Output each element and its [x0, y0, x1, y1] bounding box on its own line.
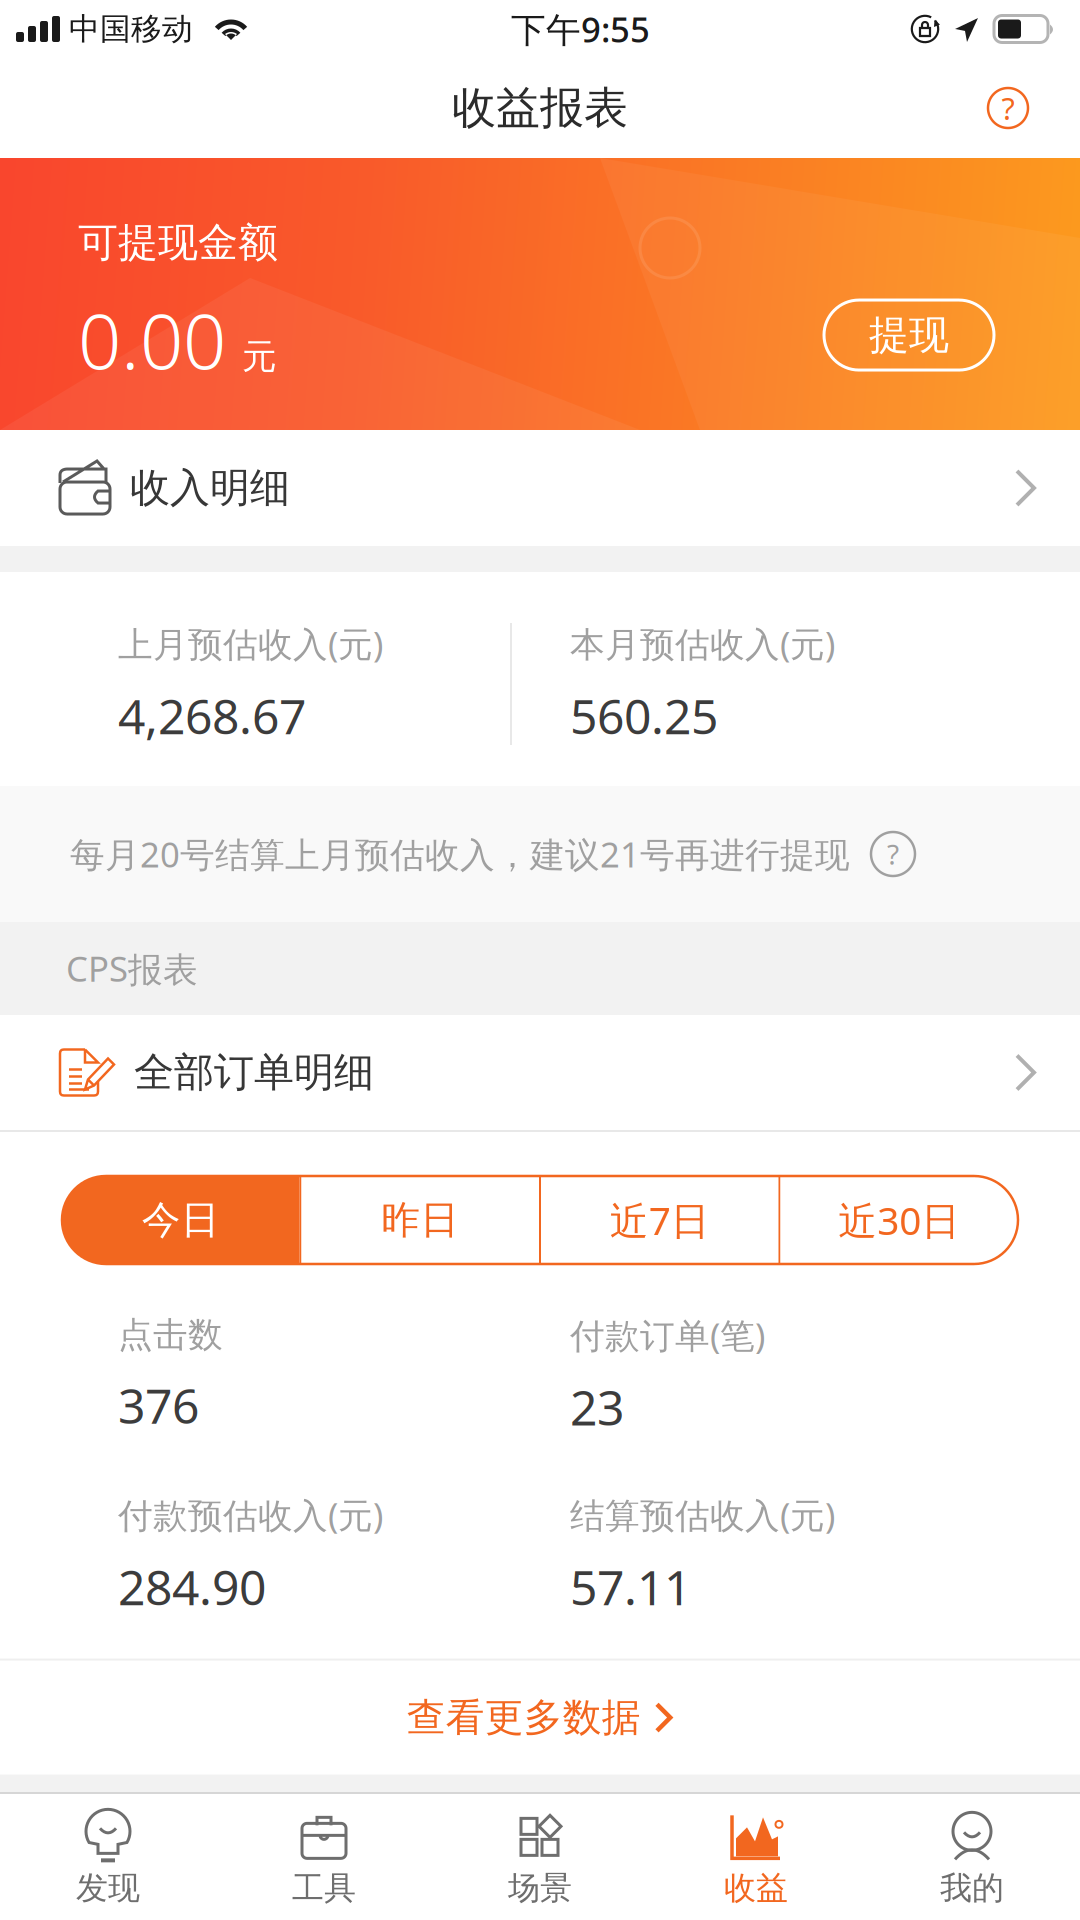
- staticText: 查看更多数据: [407, 1694, 641, 1741]
- staticText: 23: [570, 1375, 624, 1439]
- staticText: CPS报表: [66, 945, 198, 992]
- staticText: 中国移动: [69, 10, 193, 48]
- staticText: 收入明细: [130, 463, 290, 512]
- staticText: 每月20号结算上月预估收入，建议21号再进行提现: [70, 831, 850, 877]
- staticText: 收益报表: [452, 81, 628, 135]
- staticText: ?: [887, 835, 899, 873]
- staticText: 提现: [869, 310, 949, 360]
- staticText: 上月预估收入(元): [118, 621, 383, 667]
- staticText: 我的: [940, 1868, 1004, 1908]
- button[interactable]: 我的: [864, 1794, 1080, 1920]
- staticText: 57.11: [570, 1555, 691, 1618]
- staticText: 近30日: [838, 1194, 960, 1246]
- staticText: 4,268.67: [118, 684, 306, 747]
- button[interactable]: 昨日: [301, 1176, 539, 1264]
- button[interactable]: 发现: [0, 1794, 216, 1920]
- staticText: 点击数: [118, 1314, 223, 1356]
- button[interactable]: 全部订单明细: [0, 1015, 1080, 1130]
- staticText: ?: [1001, 88, 1014, 128]
- staticText: 下午9:55: [511, 6, 650, 52]
- staticText: 场景: [508, 1868, 572, 1908]
- button[interactable]: 查看更多数据: [0, 1661, 1080, 1775]
- staticText: 376: [118, 1373, 199, 1437]
- staticText: 0.00: [78, 289, 226, 390]
- button[interactable]: 场景: [432, 1794, 648, 1920]
- staticText: 结算预估收入(元): [570, 1492, 835, 1538]
- staticText: 发现: [76, 1868, 140, 1908]
- button[interactable]: 工具: [216, 1794, 432, 1920]
- staticText: 本月预估收入(元): [570, 621, 835, 667]
- button[interactable]: 收入明细: [0, 430, 1080, 546]
- staticText: 近7日: [610, 1194, 710, 1246]
- staticText: 工具: [292, 1868, 356, 1908]
- button[interactable]: 今日: [62, 1176, 299, 1264]
- staticText: 昨日: [381, 1196, 459, 1244]
- button[interactable]: 收益: [648, 1794, 864, 1920]
- staticText: 今日: [142, 1196, 220, 1244]
- staticText: 全部订单明细: [134, 1048, 374, 1097]
- button[interactable]: 帮助: [965, 65, 1051, 151]
- button[interactable]: 近30日: [780, 1176, 1018, 1264]
- staticText: 560.25: [570, 684, 718, 747]
- button[interactable]: 提现: [824, 300, 994, 370]
- staticText: 付款订单(笔): [570, 1312, 765, 1358]
- staticText: 可提现金额: [78, 218, 278, 267]
- staticText: 元: [242, 335, 277, 378]
- staticText: 收益: [724, 1868, 788, 1908]
- button[interactable]: 近7日: [541, 1176, 778, 1264]
- staticText: 付款预估收入(元): [118, 1492, 383, 1538]
- staticText: 284.90: [118, 1555, 266, 1618]
